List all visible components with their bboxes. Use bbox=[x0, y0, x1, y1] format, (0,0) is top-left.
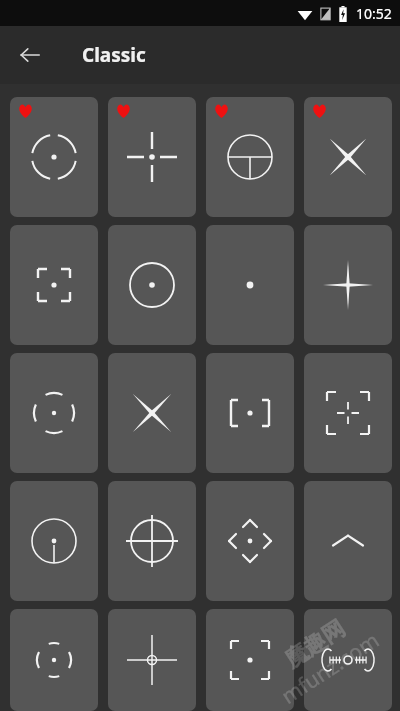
button[interactable]: Reticle 6 bbox=[108, 225, 196, 345]
staticText: Classic bbox=[82, 42, 146, 68]
button[interactable]: Reticle 16 bbox=[304, 481, 392, 601]
button[interactable]: Reticle 14 bbox=[108, 481, 196, 601]
button[interactable]: Reticle 12 bbox=[304, 353, 392, 473]
button[interactable]: Reticle 15 bbox=[206, 481, 294, 601]
button[interactable]: Reticle 18 bbox=[108, 609, 196, 711]
button[interactable]: Reticle 4 bbox=[304, 97, 392, 217]
button[interactable]: Reticle 8 bbox=[304, 225, 392, 345]
button[interactable]: Reticle 9 bbox=[10, 353, 98, 473]
button[interactable]: Back bbox=[8, 33, 52, 77]
button[interactable]: Reticle 1 bbox=[10, 97, 98, 217]
staticText: 魔趣网 bbox=[280, 614, 350, 674]
button[interactable]: Reticle 7 bbox=[206, 225, 294, 345]
button[interactable]: Reticle 20 bbox=[304, 609, 392, 711]
button[interactable]: Reticle 19 bbox=[206, 609, 294, 711]
button[interactable]: Reticle 5 bbox=[10, 225, 98, 345]
staticText: mfunz.com bbox=[276, 626, 385, 711]
button[interactable]: Reticle 10 bbox=[108, 353, 196, 473]
staticText: 10:52 bbox=[356, 4, 392, 23]
button[interactable]: Reticle 13 bbox=[10, 481, 98, 601]
button[interactable]: Reticle 3 bbox=[206, 97, 294, 217]
button[interactable]: Reticle 2 bbox=[108, 97, 196, 217]
button[interactable]: Reticle 17 bbox=[10, 609, 98, 711]
button[interactable]: Reticle 11 bbox=[206, 353, 294, 473]
